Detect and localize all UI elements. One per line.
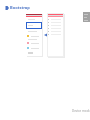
staticText: Bootstrap [10, 5, 30, 10]
button[interactable]: Logo [5, 5, 30, 10]
button[interactable] [83, 12, 90, 22]
other: Logo [5, 6, 9, 10]
staticText: Device mockups [72, 109, 90, 113]
other: Previous [44, 33, 48, 37]
